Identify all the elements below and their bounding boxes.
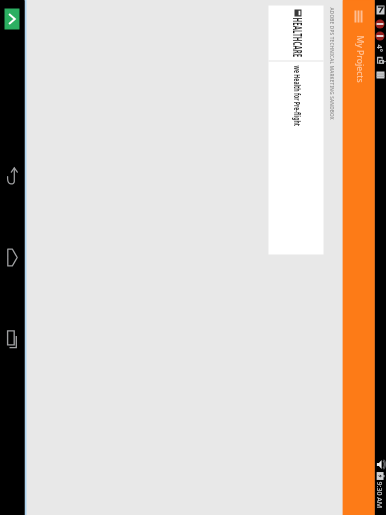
button[interactable]: Recent apps — [0, 326, 24, 352]
button[interactable]: Open navigation menu — [342, 2, 374, 30]
button[interactable]: Back — [0, 163, 24, 189]
staticText: ADOBE DPS TECHNICAL MARKETING SANDBOX — [327, 7, 335, 121]
button[interactable]: Home — [0, 244, 24, 270]
button[interactable]: HEALTHCARE — [268, 5, 323, 254]
staticText: My Projects — [353, 35, 365, 83]
button[interactable]: Expand system bar — [4, 8, 19, 29]
staticText: HEALTHCARE — [288, 17, 304, 58]
staticText: 4° — [374, 44, 384, 52]
staticText: 9:30 AM — [374, 481, 384, 508]
staticText: we Health for Pre-flight — [291, 65, 302, 126]
